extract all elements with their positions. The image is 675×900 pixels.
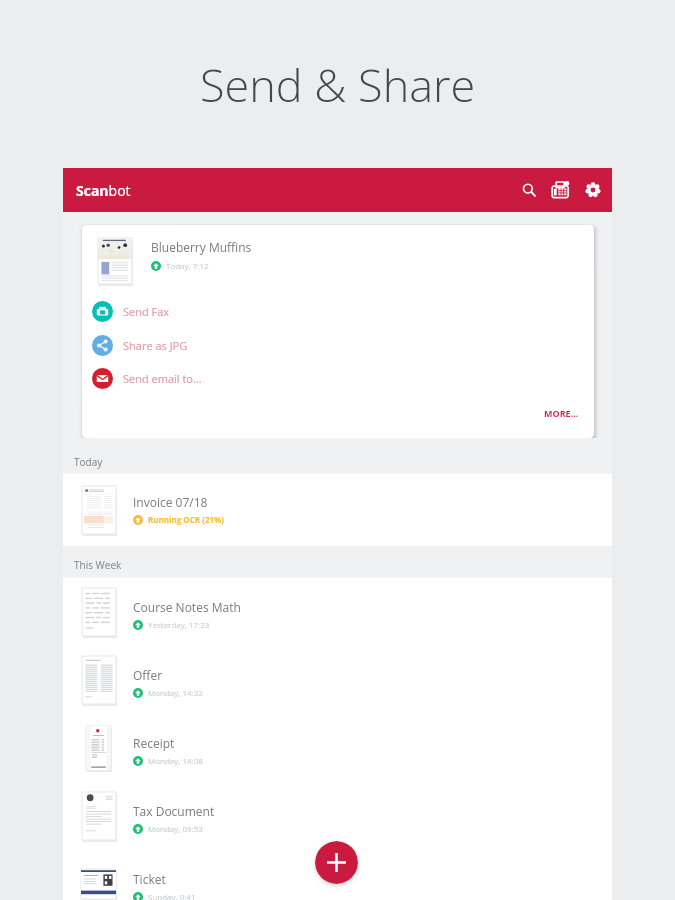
staticText: Monday, 09:53 xyxy=(148,823,203,834)
staticText: Receipt xyxy=(133,735,175,751)
button[interactable]: Search xyxy=(515,173,543,207)
staticText: Today, 7:12 xyxy=(166,260,209,271)
button[interactable]: Settings xyxy=(578,173,608,207)
staticText: Send & Share xyxy=(200,54,476,115)
staticText: Monday, 14:32 xyxy=(148,687,203,698)
staticText: Send Fax xyxy=(123,304,170,319)
button[interactable]: MORE... xyxy=(540,404,583,422)
staticText: Yesterday, 17:23 xyxy=(148,619,210,630)
button[interactable]: Course Notes Math xyxy=(63,578,612,646)
staticText: Send email to... xyxy=(123,371,202,386)
button[interactable]: Share as JPG xyxy=(82,329,594,361)
button[interactable]: Offer xyxy=(63,646,612,714)
button[interactable]: Blueberry Muffins xyxy=(82,225,594,438)
staticText: Scanbot xyxy=(76,181,131,200)
staticText: Ticket xyxy=(133,871,166,887)
staticText: Tax Document xyxy=(133,803,215,819)
staticText: Course Notes Math xyxy=(133,599,241,615)
staticText: Share as JPG xyxy=(123,338,188,353)
staticText: Blueberry Muffins xyxy=(151,239,252,255)
staticText: Invoice 07/18 xyxy=(133,494,208,510)
button[interactable]: Receipt xyxy=(63,714,612,782)
staticText: Sunday, 9:41 xyxy=(148,891,196,900)
staticText: Offer xyxy=(133,667,163,683)
button[interactable]: Invoice 07/18 xyxy=(63,474,612,546)
staticText: Monday, 14:08 xyxy=(148,755,203,766)
button[interactable]: Add document xyxy=(315,841,358,884)
button[interactable]: Tax Document xyxy=(63,782,612,850)
staticText: MORE... xyxy=(544,407,579,419)
button[interactable]: Ticket xyxy=(63,850,612,900)
button[interactable]: Send email to... xyxy=(82,362,594,394)
button[interactable]: Fax xyxy=(544,173,578,207)
staticText: Running OCR (21%) xyxy=(148,514,224,525)
staticText: Today xyxy=(74,455,103,469)
staticText: This Week xyxy=(74,558,122,572)
button[interactable]: Send Fax xyxy=(82,295,594,327)
